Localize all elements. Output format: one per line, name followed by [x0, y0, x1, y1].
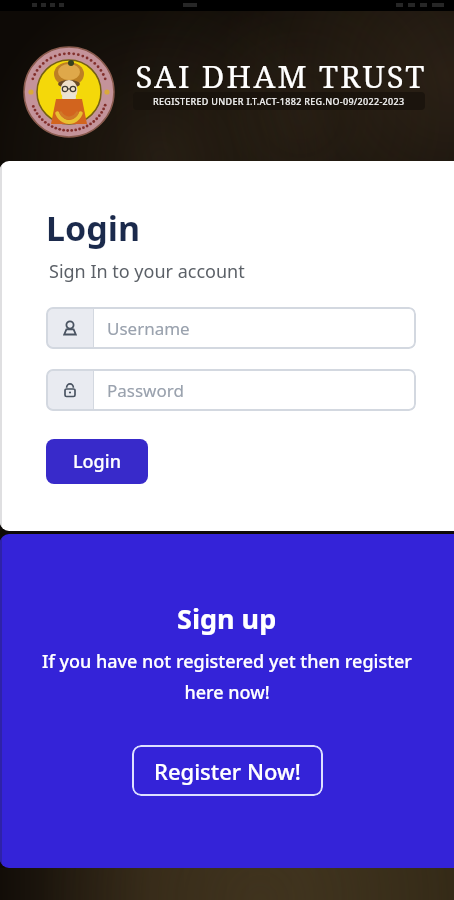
button[interactable]: Register Now!: [132, 745, 323, 796]
staticText: Sign up: [177, 600, 277, 637]
button[interactable]: [24, 47, 114, 137]
staticText: Password: [107, 379, 184, 402]
staticText: Username: [107, 317, 190, 340]
button[interactable]: Login: [46, 439, 148, 484]
staticText: Login: [46, 205, 141, 251]
staticText: Login: [73, 449, 121, 474]
staticText: REGISTERED UNDER I.T.ACT-1882 REG.NO-09/…: [153, 95, 405, 107]
button[interactable]: Username: [46, 307, 416, 349]
staticText: Register Now!: [154, 756, 301, 786]
button[interactable]: Password: [46, 369, 416, 411]
staticText: Sign In to your account: [49, 259, 245, 284]
staticText: If you have not registered yet then regi…: [42, 649, 412, 704]
staticText: SAI DHAM TRUST: [121, 55, 441, 97]
